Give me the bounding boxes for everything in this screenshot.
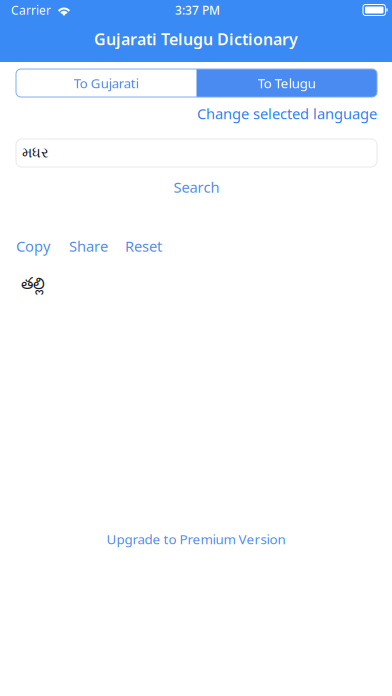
staticText: Reset [125,236,162,256]
button[interactable]: To Telugu [196,69,377,97]
staticText: Gujarati Telugu Dictionary [94,28,298,50]
staticText: 3:37 PM [175,2,220,18]
staticText: Change selected language [197,104,377,123]
button[interactable]: Reset [125,237,162,255]
button[interactable]: Search [16,178,377,196]
staticText: Copy [16,236,50,256]
staticText: Search [173,177,219,197]
button[interactable]: Copy [16,237,50,255]
staticText: తల్లి [21,275,45,297]
button[interactable]: Upgrade to Premium Version [0,530,392,548]
staticText: To Telugu [258,74,316,92]
staticText: મધર [22,146,49,160]
button[interactable]: Share [69,237,108,255]
staticText: Upgrade to Premium Version [106,530,285,548]
staticText: To Gujarati [74,74,139,92]
staticText: Carrier [11,2,51,18]
staticText: Share [69,236,108,256]
button[interactable]: To Gujarati [16,69,196,97]
button[interactable]: Change selected language [197,105,377,122]
